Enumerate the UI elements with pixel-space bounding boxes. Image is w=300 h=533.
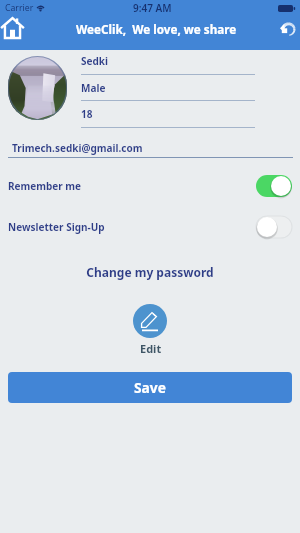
button[interactable]: Male (81, 81, 106, 95)
staticText: 9:47 AM (133, 1, 172, 15)
button[interactable]: 18 (81, 107, 93, 121)
staticText: Save (134, 378, 166, 397)
button[interactable]: Remember me (8, 175, 292, 197)
button[interactable]: Profile picture (8, 56, 67, 120)
button[interactable]: Save (8, 372, 292, 403)
staticText: Remember me (8, 179, 82, 193)
button[interactable]: Edit (133, 304, 167, 338)
staticText: WeeClik, We love, we share (76, 21, 237, 37)
button[interactable]: Sedki (81, 54, 108, 68)
button[interactable]: Newsletter Sign-Up (8, 216, 292, 238)
button[interactable]: Trimech.sedki@gmail.com (12, 141, 143, 155)
staticText: Change my password (0, 264, 300, 280)
staticText: Newsletter Sign-Up (8, 220, 105, 234)
button[interactable]: Back (275, 17, 299, 41)
staticText: Carrier (5, 2, 34, 14)
button[interactable]: Edit (140, 341, 162, 356)
button[interactable]: Home (0, 16, 24, 40)
button[interactable]: Change my password (0, 264, 300, 280)
